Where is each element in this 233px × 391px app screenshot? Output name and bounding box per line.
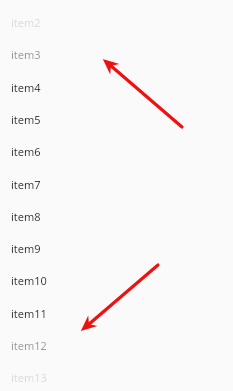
staticText: item7 [11,177,41,192]
staticText: item9 [11,241,41,256]
staticText: item2 [11,15,41,30]
other: Scroll direction annotation arrows [0,0,233,391]
button[interactable]: item10 [0,264,233,296]
staticText: item4 [11,80,41,95]
button[interactable]: item5 [0,103,233,135]
staticText: item6 [11,144,41,159]
staticText: item10 [11,273,47,288]
button[interactable]: item12 [0,329,233,361]
staticText: item13 [11,370,47,385]
staticText: item3 [11,47,41,62]
staticText: item12 [11,338,47,353]
button[interactable]: item8 [0,200,233,232]
button[interactable]: item6 [0,135,233,167]
staticText: item5 [11,112,41,127]
button[interactable]: item7 [0,168,233,200]
staticText: item8 [11,209,41,224]
staticText: item11 [11,306,47,321]
button[interactable]: item11 [0,297,233,329]
button[interactable]: item9 [0,232,233,264]
button[interactable]: item3 [0,38,233,70]
button[interactable]: item4 [0,71,233,103]
